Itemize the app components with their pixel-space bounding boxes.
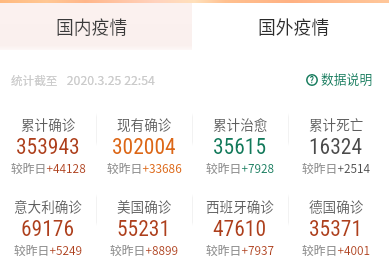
staticText: 35371 (309, 216, 363, 241)
staticText: 意大利确诊 (14, 196, 82, 216)
staticText: 较昨日+5249 (14, 241, 83, 258)
staticText: 47610 (213, 216, 267, 241)
button[interactable]: 累计死亡 (288, 114, 384, 139)
staticText: 较昨日+7928 (206, 159, 275, 176)
staticText: 较昨日+2514 (302, 159, 371, 176)
staticText: 69176 (21, 216, 75, 241)
button[interactable]: 累计确诊 (0, 114, 96, 139)
staticText: 德国确诊 (309, 196, 364, 216)
staticText: 西班牙确诊 (206, 196, 274, 216)
staticText: 353943 (16, 134, 80, 159)
button[interactable]: 国内疫情 (0, 3, 192, 50)
staticText: 较昨日+8899 (110, 241, 179, 258)
staticText: ? (310, 75, 314, 86)
button[interactable]: 现有确诊 (96, 114, 192, 139)
staticText: 较昨日+44128 (11, 159, 86, 176)
button[interactable]: 西班牙确诊 (192, 196, 288, 221)
staticText: 55231 (117, 216, 171, 241)
staticText: 数据说明 (321, 69, 373, 88)
staticText: 现有确诊 (117, 114, 172, 134)
staticText: 累计治愈 (213, 114, 268, 134)
staticText: 较昨日+7937 (206, 241, 275, 258)
staticText: 累计死亡 (309, 114, 364, 134)
button[interactable]: 数据说明 (306, 69, 373, 88)
staticText: 美国确诊 (117, 196, 172, 216)
button[interactable]: 国外疫情 (192, 3, 389, 50)
staticText: 国外疫情 (258, 13, 330, 39)
staticText: 35615 (213, 134, 267, 159)
button[interactable]: 累计治愈 (192, 114, 288, 139)
staticText: 国内疫情 (56, 13, 128, 39)
staticText: 较昨日+33686 (107, 159, 182, 176)
button[interactable]: 德国确诊 (288, 196, 384, 221)
staticText: 累计确诊 (21, 114, 76, 134)
button[interactable]: 美国确诊 (96, 196, 192, 221)
staticText: 302004 (112, 134, 176, 159)
staticText: 16324 (309, 134, 363, 159)
button[interactable]: 意大利确诊 (0, 196, 96, 221)
staticText: 较昨日+4001 (302, 241, 371, 258)
staticText: 统计截至 2020.3.25 22:54 (11, 69, 155, 89)
